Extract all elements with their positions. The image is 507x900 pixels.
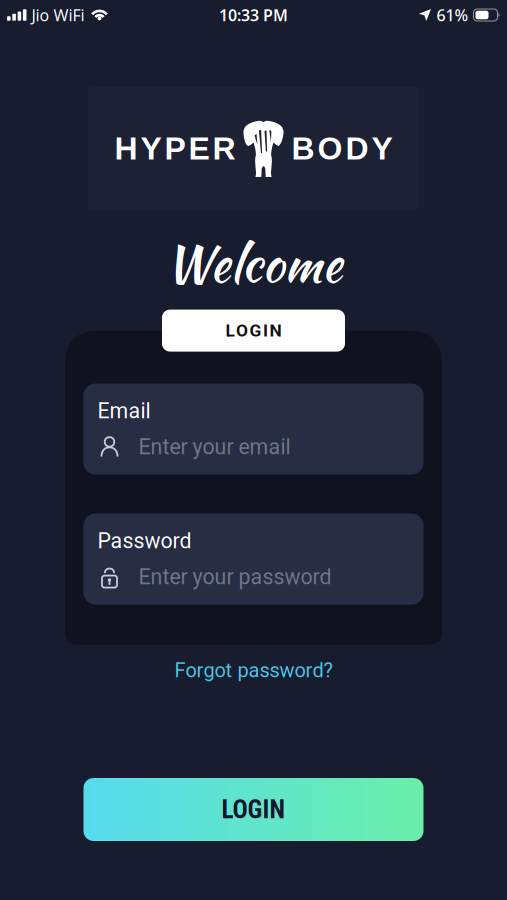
staticText: Jio WiFi (31, 4, 84, 26)
staticText: 10:33 PM (219, 4, 288, 26)
staticText: Email (97, 399, 150, 424)
button[interactable]: Forgot password? (174, 659, 332, 682)
staticText: LOGIN (221, 795, 285, 824)
staticText: 61% (436, 4, 468, 26)
staticText: Enter your email (138, 435, 290, 460)
button[interactable]: Password (83, 514, 423, 605)
button[interactable]: LOGIN (83, 778, 423, 841)
staticText: Password (97, 529, 191, 554)
staticText: Forgot password? (174, 659, 332, 682)
staticText: Welcome (165, 228, 342, 300)
button[interactable]: Email (83, 384, 423, 475)
staticText: BODY (291, 131, 392, 166)
button[interactable]: LOGIN (162, 310, 345, 352)
staticText: HYPER (114, 131, 235, 166)
staticText: Enter your password (138, 565, 331, 590)
staticText: LOGIN (225, 320, 281, 341)
